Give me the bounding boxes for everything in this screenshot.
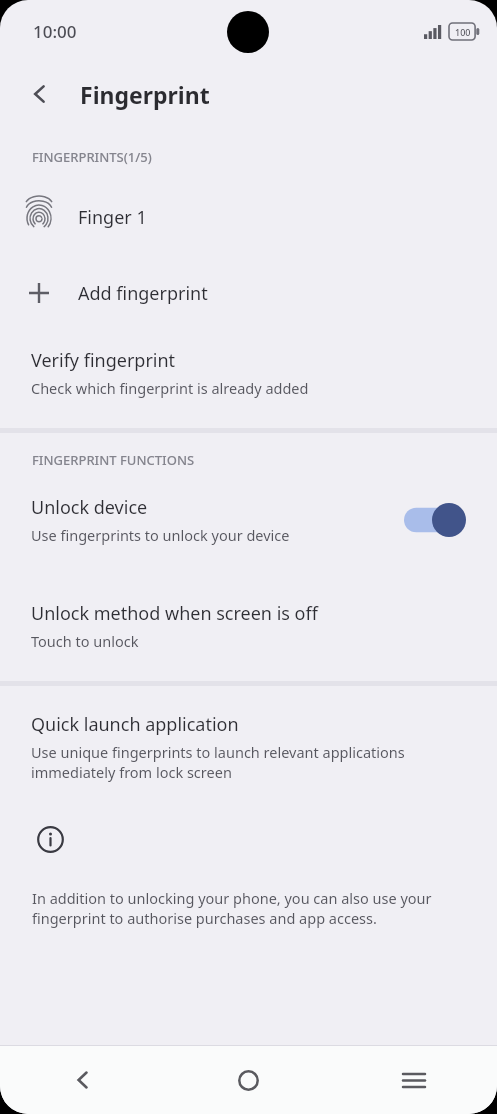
button[interactable]: Quick launch application	[0, 708, 497, 786]
staticText: FINGERPRINT FUNCTIONS	[32, 451, 195, 469]
staticText: Use unique fingerprints to launch releva…	[31, 742, 466, 782]
staticText: FINGERPRINTS(1/5)	[32, 148, 152, 166]
staticText: Use fingerprints to unlock your device	[31, 525, 290, 545]
staticText: 10:00	[33, 20, 77, 43]
staticText: Quick launch application	[31, 712, 239, 737]
button[interactable]: Back	[0, 1046, 165, 1114]
button[interactable]: Add fingerprint	[0, 266, 497, 320]
staticText: In addition to unlocking your phone, you…	[32, 888, 465, 929]
button[interactable]: Home	[165, 1046, 331, 1114]
button[interactable]: Finger 1	[0, 188, 497, 246]
staticText: Check which fingerprint is already added	[31, 378, 309, 398]
staticText: Add fingerprint	[78, 281, 208, 306]
button[interactable]: Verify fingerprint	[0, 344, 497, 402]
button[interactable]: Unlock device toggle	[404, 503, 466, 537]
staticText: 100	[455, 26, 471, 38]
staticText: Verify fingerprint	[31, 348, 176, 373]
staticText: Unlock method when screen is off	[31, 601, 318, 626]
staticText: Fingerprint	[80, 79, 210, 110]
button[interactable]: Recent apps	[331, 1046, 497, 1114]
button[interactable]: Unlock method when screen is off	[0, 597, 497, 655]
button[interactable]: Information	[33, 822, 67, 856]
button[interactable]: Back	[18, 72, 62, 116]
button[interactable]: Unlock device	[0, 491, 497, 549]
staticText: Finger 1	[78, 205, 147, 230]
staticText: Unlock device	[31, 495, 148, 520]
staticText: Touch to unlock	[31, 631, 139, 651]
